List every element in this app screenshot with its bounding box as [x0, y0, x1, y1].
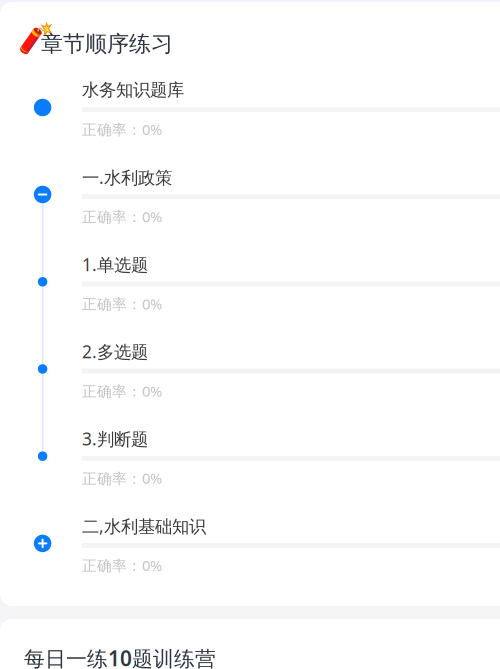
button[interactable]: 1.单选题	[82, 247, 500, 335]
staticText: 二,水利基础知识	[82, 514, 206, 537]
staticText: 🧨	[18, 21, 55, 54]
staticText: 正确率：0%	[82, 294, 162, 313]
staticText: 3.判断题	[82, 427, 148, 450]
button[interactable]: 每日一练10题训练营	[24, 644, 216, 669]
staticText: 1.单选题	[82, 253, 148, 276]
staticText: 正确率：0%	[82, 556, 162, 575]
staticText: 正确率：0%	[82, 468, 162, 488]
staticText: 章节顺序练习	[41, 30, 173, 58]
button[interactable]: 一.水利政策	[82, 160, 500, 247]
button[interactable]: 二,水利基础知识	[82, 509, 500, 596]
button[interactable]: 1.单选题	[38, 277, 47, 287]
staticText: 每日一练10题训练营	[24, 644, 216, 669]
button[interactable]: 水务知识题库	[82, 73, 500, 160]
staticText: 正确率：0%	[82, 207, 162, 226]
staticText: 正确率：0%	[82, 381, 162, 401]
button[interactable]: 展开 二,水利基础知识	[34, 535, 51, 552]
button[interactable]: 收起 一.水利政策	[34, 186, 51, 203]
staticText: 2.多选题	[82, 340, 148, 363]
staticText: 正确率：0%	[82, 120, 162, 139]
button[interactable]: 2.多选题	[82, 335, 500, 422]
button[interactable]: 2.多选题	[38, 364, 47, 374]
staticText: 水务知识题库	[82, 79, 184, 101]
button[interactable]: 3.判断题	[82, 422, 500, 509]
staticText: 一.水利政策	[82, 166, 172, 189]
button[interactable]: 3.判断题	[38, 451, 47, 461]
button[interactable]: 水务知识题库	[34, 99, 51, 116]
